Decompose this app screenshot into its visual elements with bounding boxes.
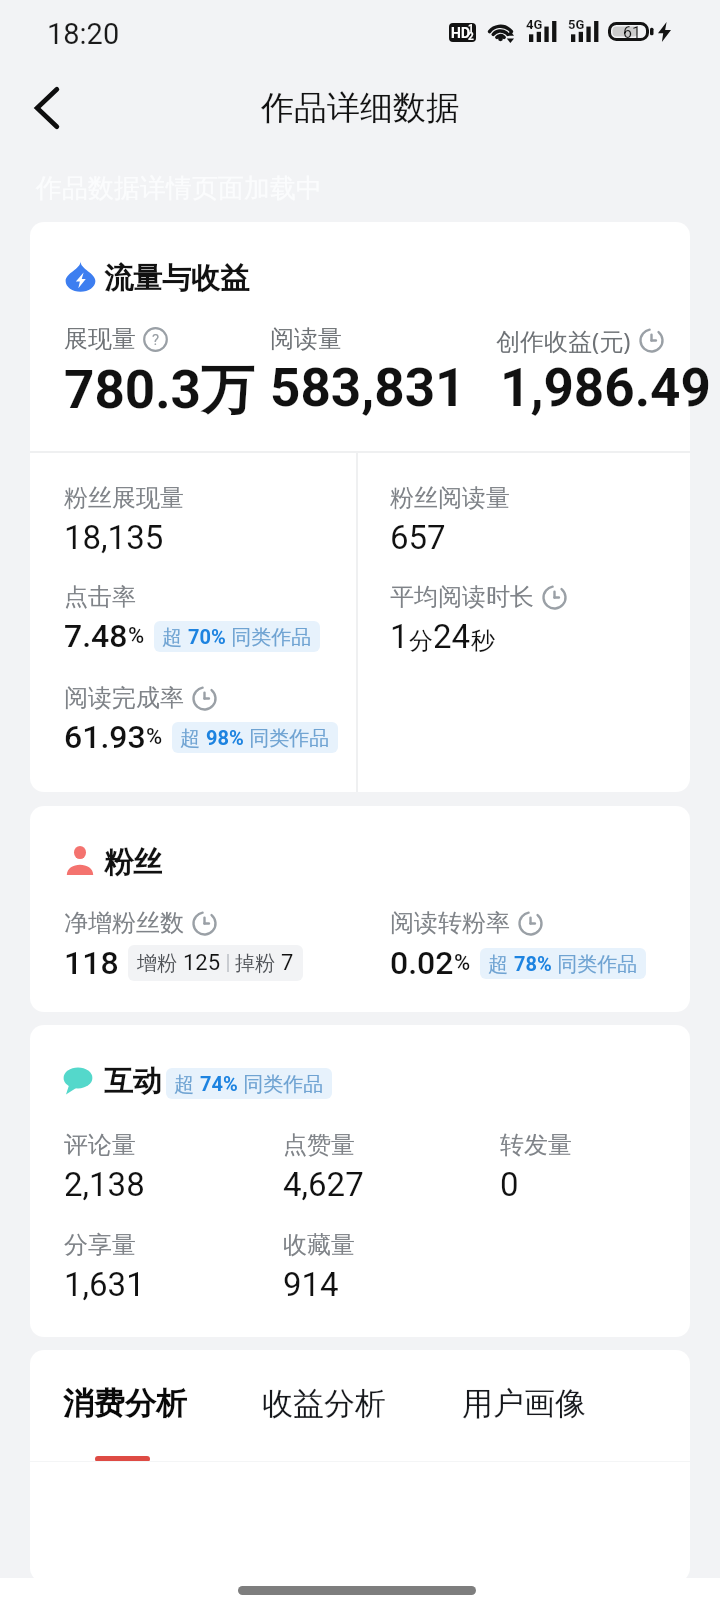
button[interactable]: 用户画像 — [450, 1372, 600, 1462]
staticText: 1 — [468, 23, 474, 35]
staticText: 7.48 — [64, 617, 128, 655]
button[interactable]: Back — [13, 74, 81, 142]
staticText: 超 — [488, 950, 514, 977]
staticText: HD — [451, 25, 470, 41]
staticText: 粉丝阅读量 — [390, 483, 510, 513]
staticText: 收益分析 — [262, 1384, 386, 1423]
staticText: 2,138 — [64, 1165, 145, 1204]
staticText: 125 — [183, 950, 221, 976]
staticText: % — [454, 950, 471, 976]
staticText: % — [128, 623, 145, 649]
staticText: 61.93 — [64, 718, 146, 756]
staticText: 24 — [433, 617, 471, 656]
staticText: 展现量 — [64, 324, 136, 354]
staticText: 78% — [514, 952, 552, 975]
staticText: 同类作品 — [238, 1070, 324, 1097]
staticText: 点赞量 — [283, 1130, 355, 1160]
staticText: 0.02 — [390, 944, 454, 982]
staticText: 1,986.49 — [500, 357, 711, 419]
staticText: ? — [152, 331, 160, 349]
staticText: 98% — [206, 726, 244, 749]
staticText: 583,831 — [270, 357, 466, 419]
staticText: 互动 — [104, 1063, 162, 1100]
staticText: 阅读完成率 — [64, 683, 184, 713]
staticText: 780.3万 — [64, 357, 255, 424]
staticText: 增粉 — [137, 951, 177, 976]
staticText: 消费分析 — [63, 1384, 187, 1423]
staticText: 粉丝 — [104, 844, 162, 881]
staticText: 阅读转粉率 — [390, 908, 510, 938]
staticText: 7 — [281, 950, 294, 976]
staticText: 4G — [526, 17, 543, 32]
staticText: 18,135 — [64, 518, 164, 557]
staticText: 流量与收益 — [104, 260, 249, 297]
staticText: 掉粉 — [235, 951, 275, 976]
staticText: 评论量 — [64, 1130, 136, 1160]
staticText: 点击率 — [64, 582, 136, 612]
staticText: 作品详细数据 — [261, 87, 459, 129]
staticText: 118 — [64, 944, 119, 982]
staticText: 2 — [468, 31, 474, 42]
staticText: 秒 — [471, 626, 495, 656]
staticText: 平均阅读时长 — [390, 582, 534, 612]
staticText: 74% — [200, 1072, 238, 1095]
staticText: 分 — [409, 626, 433, 656]
staticText: 1 — [390, 617, 409, 656]
staticText: 同类作品 — [244, 724, 330, 751]
staticText: 分享量 — [64, 1230, 136, 1260]
staticText: 粉丝展现量 — [64, 483, 184, 513]
staticText: 收藏量 — [283, 1230, 355, 1260]
staticText: 914 — [283, 1265, 339, 1304]
staticText: 同类作品 — [226, 623, 312, 650]
staticText: 阅读量 — [270, 324, 342, 354]
staticText: 61 — [623, 23, 641, 42]
staticText: 转发量 — [500, 1130, 572, 1160]
staticText: % — [146, 724, 163, 750]
staticText: 1,631 — [64, 1265, 145, 1304]
staticText: 0 — [500, 1165, 519, 1204]
staticText: 5G — [568, 17, 585, 32]
button[interactable]: 收益分析 — [250, 1372, 400, 1462]
button[interactable]: 消费分析 — [51, 1372, 201, 1462]
staticText: 用户画像 — [462, 1384, 586, 1423]
staticText: 同类作品 — [552, 950, 638, 977]
staticText: 超 — [162, 623, 188, 650]
staticText: 4,627 — [283, 1165, 364, 1204]
staticText: 净增粉丝数 — [64, 908, 184, 938]
staticText: 657 — [390, 518, 446, 557]
staticText: 70% — [188, 625, 226, 648]
staticText: 18:20 — [47, 17, 120, 51]
staticText: 创作收益(元) — [496, 324, 631, 357]
staticText: 作品数据详情页面加载中 — [36, 172, 322, 205]
staticText: 超 — [180, 724, 206, 751]
staticText: 超 — [174, 1070, 200, 1097]
